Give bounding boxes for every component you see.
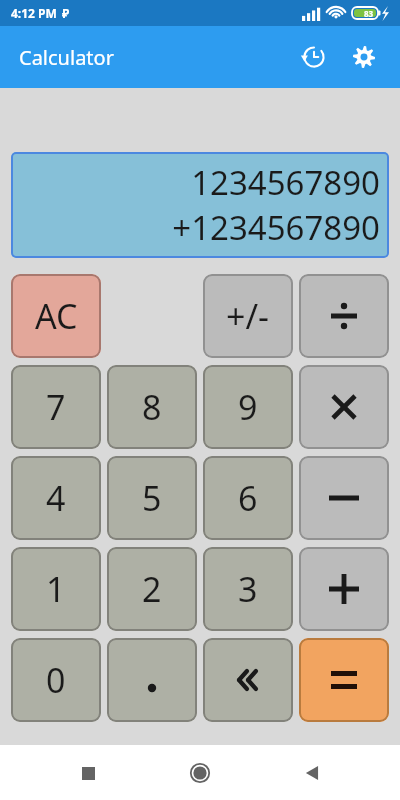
staticText: AC bbox=[35, 293, 78, 339]
button[interactable]: Backspace bbox=[203, 638, 293, 722]
button[interactable]: 8 bbox=[107, 365, 197, 449]
button[interactable]: Subtract bbox=[299, 456, 389, 540]
button[interactable]: 1234567890 bbox=[11, 152, 389, 258]
button[interactable]: 4 bbox=[11, 456, 101, 540]
staticText: 83 bbox=[364, 8, 374, 19]
staticText: 4 bbox=[46, 475, 66, 521]
button[interactable]: Home bbox=[176, 749, 224, 797]
staticText: ₽ bbox=[62, 5, 70, 21]
button[interactable]: AC bbox=[11, 274, 101, 358]
button[interactable]: Add bbox=[299, 547, 389, 631]
button[interactable]: 2 bbox=[107, 547, 197, 631]
button[interactable]: Divide bbox=[299, 274, 389, 358]
staticText: 5 bbox=[142, 475, 162, 521]
staticText: +1234567890 bbox=[172, 205, 380, 250]
staticText: 1 bbox=[46, 566, 66, 612]
button[interactable]: 6 bbox=[203, 456, 293, 540]
button[interactable]: Settings bbox=[342, 35, 386, 79]
staticText: 0 bbox=[46, 657, 66, 703]
button[interactable]: 3 bbox=[203, 547, 293, 631]
button[interactable]: +/- bbox=[203, 274, 293, 358]
staticText: 7 bbox=[46, 384, 66, 430]
staticText: 2 bbox=[142, 566, 162, 612]
staticText: 1234567890 bbox=[191, 160, 380, 205]
button[interactable]: History bbox=[292, 35, 336, 79]
button[interactable]: 5 bbox=[107, 456, 197, 540]
button[interactable]: 7 bbox=[11, 365, 101, 449]
button[interactable]: Multiply bbox=[299, 365, 389, 449]
button[interactable]: Decimal point bbox=[107, 638, 197, 722]
staticText: 4:12 PM bbox=[11, 5, 57, 21]
button[interactable]: 0 bbox=[11, 638, 101, 722]
staticText: 8 bbox=[142, 384, 162, 430]
button[interactable]: Back bbox=[288, 749, 336, 797]
staticText: Calculator bbox=[19, 44, 114, 71]
staticText: +/- bbox=[226, 293, 270, 339]
staticText: 9 bbox=[238, 384, 258, 430]
button[interactable]: Equals bbox=[299, 638, 389, 722]
button[interactable]: 9 bbox=[203, 365, 293, 449]
button[interactable]: 1 bbox=[11, 547, 101, 631]
staticText: 6 bbox=[238, 475, 258, 521]
button[interactable]: Recent apps bbox=[64, 749, 112, 797]
staticText: 3 bbox=[238, 566, 258, 612]
